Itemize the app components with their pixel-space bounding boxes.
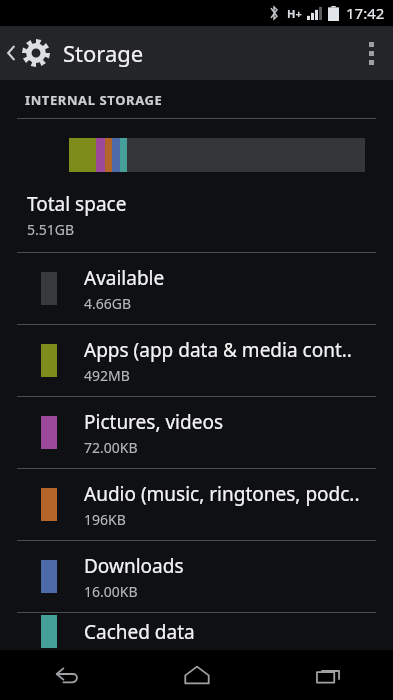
staticText: Apps (app data & media cont.. (84, 337, 352, 363)
other: Back (6, 43, 16, 63)
staticText: 5.51GB (27, 220, 75, 239)
staticText: Cached data (84, 619, 195, 645)
staticText: 196KB (84, 510, 126, 529)
button[interactable]: Downloads (0, 541, 393, 612)
button[interactable]: Back (0, 650, 131, 700)
button[interactable]: Recent apps (262, 650, 393, 700)
staticText: Available (84, 265, 165, 291)
button[interactable]: Back (0, 26, 154, 80)
button[interactable]: Audio (music, ringtones, podc.. (0, 469, 393, 540)
staticText: H+ (287, 6, 302, 21)
button[interactable]: Apps (app data & media cont.. (0, 325, 393, 396)
button[interactable]: More options (349, 26, 393, 80)
staticText: Storage (63, 38, 144, 68)
staticText: 72.00KB (84, 438, 138, 457)
staticText: Downloads (84, 553, 184, 579)
staticText: INTERNAL STORAGE (25, 91, 163, 109)
staticText: Total space (27, 191, 127, 217)
button[interactable]: Cached data (0, 613, 393, 650)
staticText: 4.66GB (84, 294, 132, 313)
staticText: 492MB (84, 366, 130, 385)
button[interactable]: Available (0, 253, 393, 324)
staticText: 16.00KB (84, 582, 138, 601)
button[interactable]: Total space (0, 190, 393, 252)
staticText: Audio (music, ringtones, podc.. (84, 481, 360, 507)
button[interactable]: Pictures, videos (0, 397, 393, 468)
button[interactable]: Home (131, 650, 262, 700)
staticText: Pictures, videos (84, 409, 223, 435)
staticText: 17:42 (346, 3, 385, 23)
